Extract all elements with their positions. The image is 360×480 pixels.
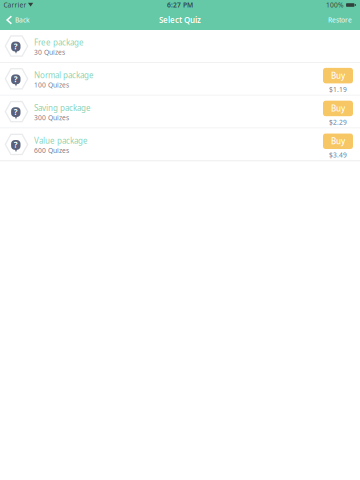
- staticText: Restore: [328, 16, 352, 24]
- staticText: ?: [14, 74, 18, 84]
- staticText: 6:27 PM: [167, 1, 193, 9]
- staticText: Buy: [331, 70, 345, 81]
- button[interactable]: ?: [0, 128, 360, 160]
- staticText: ?: [14, 139, 18, 150]
- staticText: Value package: [34, 135, 88, 146]
- staticText: Free package: [34, 37, 84, 48]
- staticText: $2.29: [329, 118, 347, 127]
- staticText: 100%: [326, 1, 344, 9]
- staticText: $3.49: [329, 150, 347, 159]
- staticText: Normal package: [34, 70, 94, 80]
- button[interactable]: ?: [0, 30, 360, 62]
- staticText: Back: [15, 16, 30, 24]
- staticText: $1.19: [329, 85, 347, 94]
- button[interactable]: ?: [0, 96, 360, 128]
- staticText: 300 Quizes: [34, 113, 69, 122]
- staticText: Buy: [331, 103, 345, 114]
- button[interactable]: ?: [0, 63, 360, 95]
- staticText: 600 Quizes: [34, 146, 69, 155]
- staticText: Saving package: [34, 103, 91, 113]
- staticText: 100 Quizes: [34, 80, 69, 89]
- staticText: Buy: [331, 136, 345, 146]
- staticText: ?: [14, 107, 18, 117]
- staticText: Carrier: [3, 1, 26, 9]
- staticText: Select Quiz: [159, 15, 201, 25]
- staticText: ?: [14, 41, 18, 52]
- button[interactable]: Back: [0, 15, 30, 25]
- staticText: 30 Quizes: [34, 48, 65, 57]
- button[interactable]: Restore: [328, 16, 360, 24]
